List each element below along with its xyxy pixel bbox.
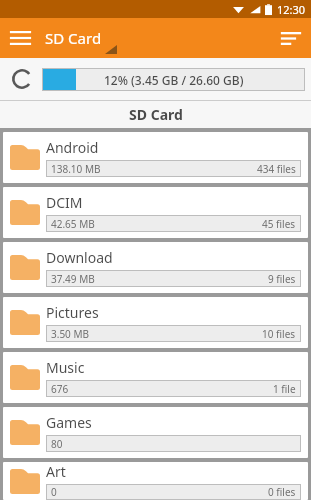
button[interactable]: Music [3,352,308,403]
staticText: 12:30 [277,2,306,17]
button[interactable]: 12% (3.45 GB / 26.60 GB) [42,68,305,91]
staticText: 10 files [262,327,296,341]
staticText: 45 files [262,217,296,231]
staticText: 42.65 MB [51,217,95,231]
staticText: SD Card [129,105,183,124]
staticText: 9 files [268,272,296,286]
staticText: 676 [51,382,69,396]
button[interactable]: Android [3,132,308,183]
staticText: Art [46,462,66,481]
staticText: 0 [51,485,57,499]
staticText: Download [46,248,113,267]
staticText: 1 file [273,382,296,396]
staticText: 3.50 MB [51,327,90,341]
staticText: Games [46,413,92,432]
button[interactable]: Art [3,462,308,500]
staticText: 0 files [268,485,296,499]
button[interactable]: Download [3,242,308,293]
button[interactable]: Pictures [3,297,308,348]
staticText: 12% (3.45 GB / 26.60 GB) [104,72,244,88]
staticText: 80 [51,437,63,451]
staticText: Music [46,358,85,377]
button[interactable]: DCIM [3,187,308,238]
button[interactable]: Games [3,407,308,458]
staticText: Pictures [46,303,99,322]
button[interactable]: Sort [271,18,311,58]
staticText: SD Card [45,28,102,48]
button[interactable]: Refresh [6,63,38,95]
button[interactable]: SD Card [45,18,102,58]
staticText: DCIM [46,193,83,212]
staticText: 37.49 MB [51,272,95,286]
staticText: Android [46,138,99,157]
staticText: 138.10 MB [51,162,101,176]
button[interactable]: Open navigation drawer [0,18,40,58]
staticText: 434 files [257,162,296,176]
